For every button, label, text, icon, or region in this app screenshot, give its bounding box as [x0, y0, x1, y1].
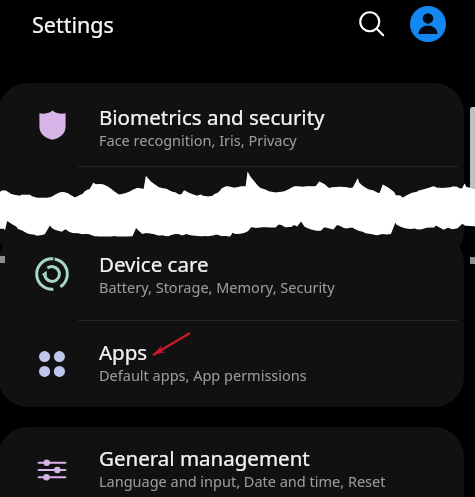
- staticText: Face recognition, Iris, Privacy: [99, 130, 297, 150]
- button[interactable]: Settings: [20, 1, 130, 47]
- staticText: General management: [99, 444, 310, 472]
- staticText: Settings: [32, 10, 114, 39]
- staticText: Battery, Storage, Memory, Security: [99, 277, 335, 297]
- button[interactable]: Apps: [0, 321, 464, 407]
- button[interactable]: General management: [0, 427, 464, 497]
- button[interactable]: Search: [354, 6, 390, 42]
- staticText: Language and input, Date and time, Reset: [99, 471, 386, 491]
- staticText: Apps: [99, 338, 148, 366]
- button[interactable]: Account: [410, 6, 446, 42]
- staticText: Default apps, App permissions: [99, 365, 307, 385]
- button[interactable]: Device care: [0, 233, 464, 319]
- staticText: Biometrics and security: [99, 103, 325, 131]
- button[interactable]: Biometrics and security: [0, 86, 464, 172]
- staticText: Device care: [99, 250, 209, 278]
